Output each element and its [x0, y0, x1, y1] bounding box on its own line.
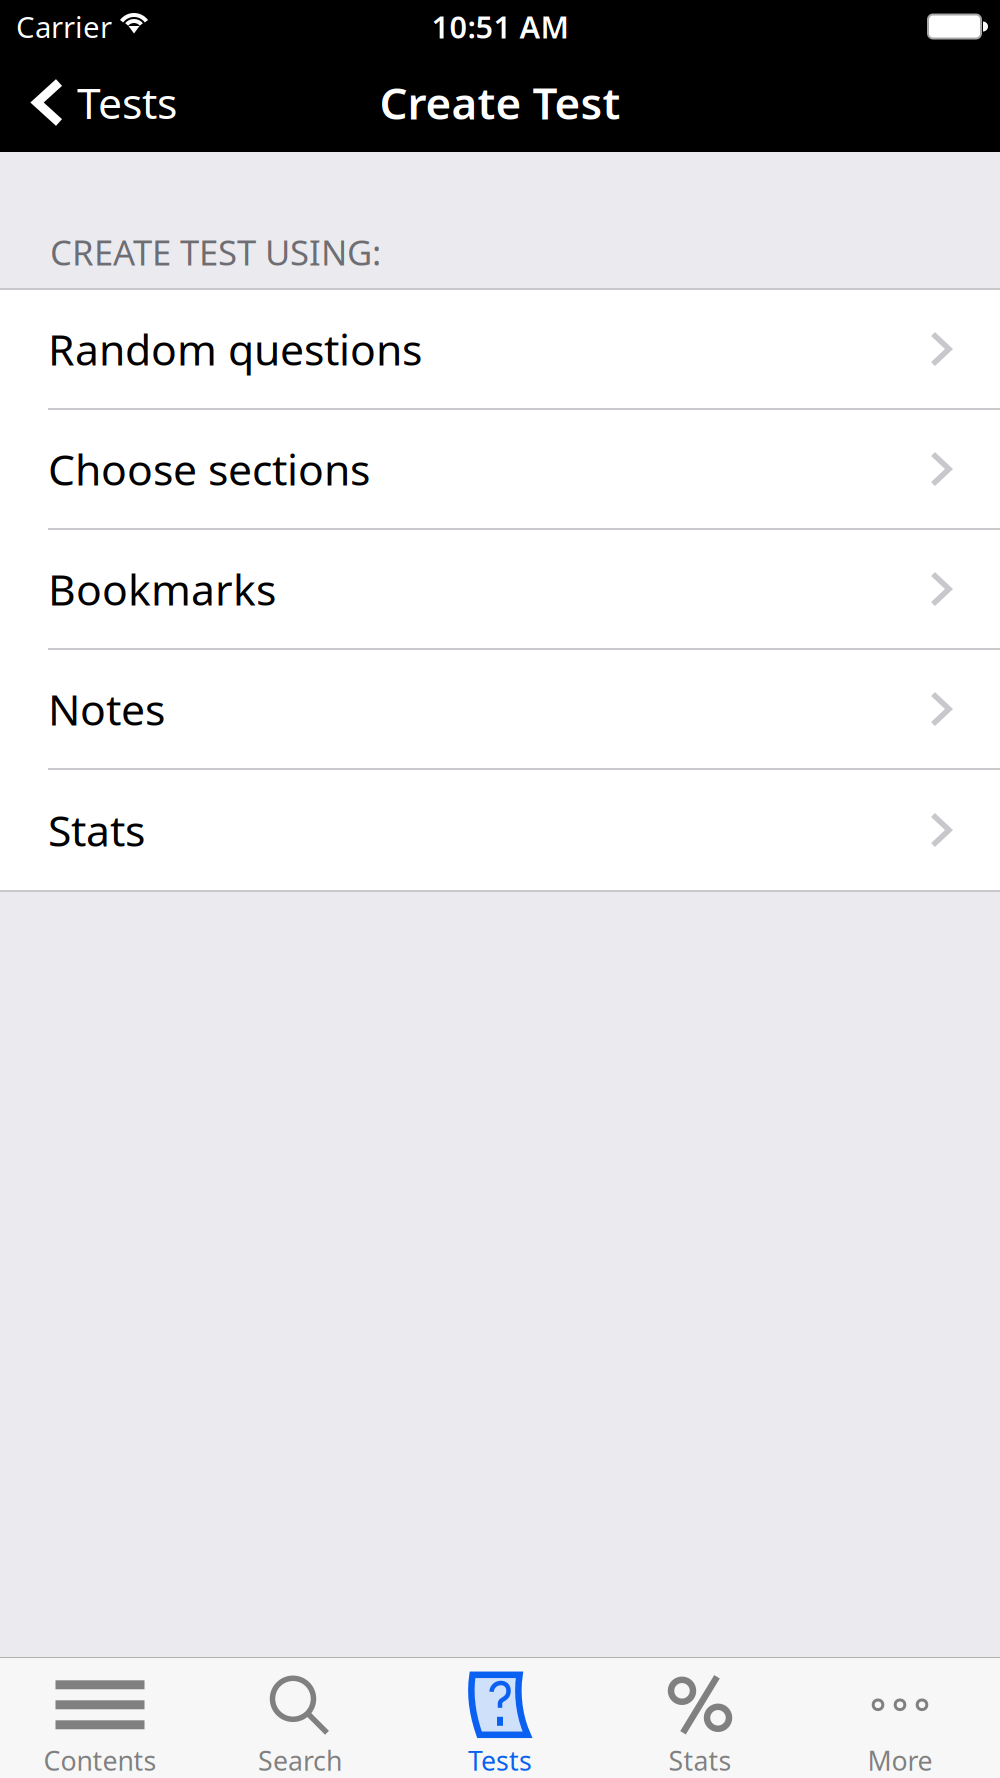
- staticText: Create Test: [379, 73, 620, 132]
- button[interactable]: More: [800, 1658, 1000, 1778]
- button[interactable]: Tests: [0, 53, 191, 152]
- button[interactable]: Choose sections: [0, 410, 1000, 530]
- staticText: Choose sections: [48, 441, 370, 497]
- button[interactable]: Contents: [0, 1658, 200, 1778]
- staticText: Tests: [468, 1743, 532, 1778]
- button[interactable]: Search: [200, 1658, 400, 1778]
- staticText: Contents: [43, 1743, 156, 1778]
- staticText: Carrier: [16, 7, 112, 46]
- staticText: Stats: [668, 1743, 731, 1778]
- staticText: Bookmarks: [48, 561, 276, 617]
- button[interactable]: Stats: [0, 770, 1000, 890]
- staticText: More: [867, 1743, 932, 1778]
- button[interactable]: Notes: [0, 650, 1000, 770]
- staticText: Search: [258, 1743, 342, 1778]
- button[interactable]: Bookmarks: [0, 530, 1000, 650]
- button[interactable]: Tests: [400, 1658, 600, 1778]
- staticText: Notes: [48, 681, 165, 737]
- staticText: 10:51 AM: [431, 6, 568, 47]
- staticText: Random questions: [48, 321, 422, 377]
- staticText: Stats: [48, 802, 145, 858]
- staticText: Tests: [77, 74, 177, 131]
- staticText: CREATE TEST USING:: [50, 229, 381, 275]
- button[interactable]: Stats: [600, 1658, 800, 1778]
- button[interactable]: Random questions: [0, 290, 1000, 410]
